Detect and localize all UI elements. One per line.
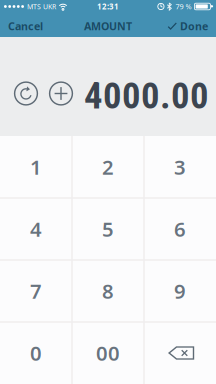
staticText: 0 <box>30 339 42 367</box>
staticText: 12:31 <box>97 1 119 12</box>
staticText: 79 % <box>175 1 191 11</box>
button[interactable]: 8 <box>72 260 144 322</box>
staticText: AMOUNT <box>84 19 132 33</box>
button[interactable]: Done <box>167 11 216 39</box>
staticText: 3 <box>174 153 186 181</box>
button[interactable]: 5 <box>72 198 144 260</box>
button[interactable]: 6 <box>144 198 216 260</box>
staticText: 8 <box>102 277 114 305</box>
button[interactable]: 4 <box>0 198 72 260</box>
button[interactable]: Reset amount <box>14 81 38 105</box>
button[interactable]: 00 <box>72 322 144 384</box>
button[interactable]: 3 <box>144 136 216 198</box>
button[interactable]: Delete <box>144 322 216 384</box>
staticText: 4 <box>30 215 42 243</box>
button[interactable]: 1 <box>0 136 72 198</box>
staticText: 9 <box>174 277 186 305</box>
button[interactable]: 0 <box>0 322 72 384</box>
staticText: Cancel <box>8 19 43 33</box>
button[interactable]: 9 <box>144 260 216 322</box>
button[interactable]: Add <box>49 81 73 105</box>
staticText: 5 <box>102 215 114 243</box>
staticText: 1 <box>30 153 42 181</box>
staticText: Done <box>180 19 208 33</box>
staticText: 4000.00 <box>84 74 209 117</box>
button[interactable]: Cancel <box>0 11 43 39</box>
staticText: 7 <box>30 277 42 305</box>
staticText: 2 <box>102 153 114 181</box>
staticText: MTS UKR <box>27 2 56 11</box>
staticText: 00 <box>96 339 120 367</box>
button[interactable]: 2 <box>72 136 144 198</box>
staticText: 6 <box>174 215 186 243</box>
button[interactable]: 7 <box>0 260 72 322</box>
